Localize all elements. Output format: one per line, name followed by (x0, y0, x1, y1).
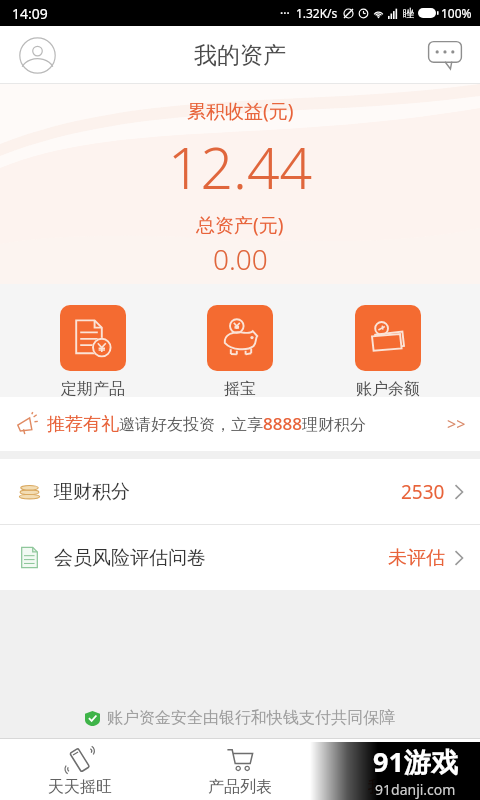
staticText: 91游戏 (373, 743, 458, 780)
staticText: 账户资金安全由银行和快钱支付共同保障 (107, 708, 395, 728)
button[interactable]: 定期产品 (38, 284, 148, 397)
staticText: 2530 (401, 479, 445, 505)
staticText: 累积收益(元) (187, 98, 294, 124)
button[interactable]: 会员风险评估问卷 (0, 525, 480, 590)
button[interactable]: 我的资产 (320, 739, 480, 800)
button[interactable]: Profile (14, 32, 60, 78)
staticText: 账户余额 (356, 379, 420, 397)
button[interactable]: 摇宝 (185, 284, 295, 397)
staticText: 天天摇旺 (48, 777, 112, 797)
button[interactable]: 推荐有礼邀请好友投资，立享8888理财积分 (0, 397, 480, 451)
staticText: 总资产(元) (196, 212, 284, 238)
staticText: ··· 1.32K/s (280, 5, 338, 21)
button[interactable]: 理财积分 (0, 459, 480, 524)
staticText: 摇宝 (224, 379, 256, 397)
staticText: 推荐有礼邀请好友投资，立享8888理财积分 (47, 412, 366, 436)
staticText: 91danji.com (375, 780, 456, 799)
staticText: 12.44 (168, 128, 313, 206)
staticText: 100% (441, 5, 472, 21)
button[interactable]: 天天摇旺 (0, 739, 160, 800)
staticText: 未评估 (388, 546, 445, 570)
button[interactable]: Messages (422, 32, 468, 78)
button[interactable]: 产品列表 (160, 739, 320, 800)
button[interactable]: 账户余额 (333, 284, 443, 397)
staticText: 我的资产 (368, 777, 432, 797)
staticText: 0.00 (213, 240, 268, 278)
staticText: 睉 (403, 6, 414, 20)
staticText: >> (447, 413, 466, 435)
staticText: 会员风险评估问卷 (54, 546, 206, 570)
staticText: 定期产品 (61, 379, 125, 397)
staticText: 产品列表 (208, 777, 272, 797)
staticText: 理财积分 (54, 480, 130, 504)
staticText: 14:09 (12, 4, 48, 23)
staticText: 我的资产 (194, 41, 286, 70)
